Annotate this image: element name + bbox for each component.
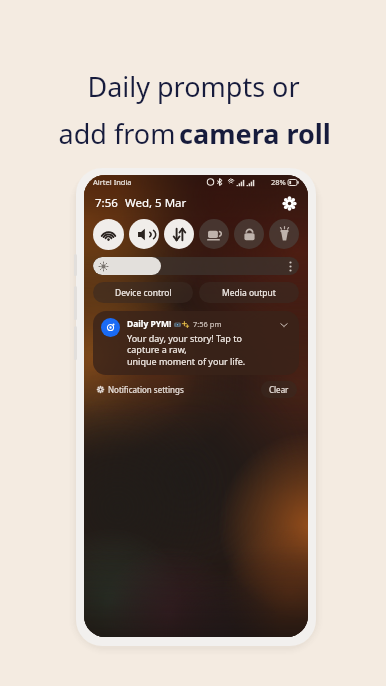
staticText: Clear — [269, 384, 289, 395]
button[interactable]: Notification settings — [96, 382, 185, 397]
button[interactable]: Device control — [93, 282, 193, 303]
button[interactable]: Daily PYM! — [93, 311, 299, 375]
button[interactable]: Sound — [129, 219, 159, 249]
staticText: add from — [55, 115, 179, 152]
staticText: Daily PYM! — [127, 318, 172, 330]
button[interactable]: Brightness — [93, 257, 299, 275]
staticText: Airtel India — [93, 177, 132, 187]
staticText: Daily prompts or — [87, 68, 300, 105]
staticText: 7:56 pm — [193, 319, 222, 329]
staticText: Media output — [222, 287, 276, 299]
staticText: Your day, your story! Tap to capture a r… — [127, 332, 273, 368]
staticText: camera roll — [179, 115, 331, 152]
button[interactable]: Clear — [261, 381, 297, 398]
button[interactable]: Media output — [199, 282, 299, 303]
button[interactable]: Do not disturb — [199, 219, 229, 249]
staticText: 7:56 — [95, 195, 118, 211]
button[interactable]: Expand — [277, 318, 291, 332]
button[interactable]: Mobile data — [164, 219, 194, 249]
staticText: Wed, 5 Mar — [125, 195, 187, 211]
button[interactable]: Flashlight — [269, 219, 299, 249]
button[interactable]: Settings — [279, 193, 299, 213]
staticText: 28% — [271, 177, 286, 187]
staticText: Notification settings — [108, 384, 184, 395]
staticText: Device control — [115, 287, 172, 299]
button[interactable]: Lock — [234, 219, 264, 249]
button[interactable]: Wi-Fi — [93, 219, 124, 250]
